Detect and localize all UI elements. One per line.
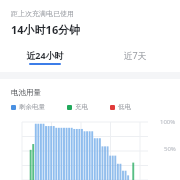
button[interactable]: 近7天: [90, 46, 180, 68]
button[interactable]: 近24小时: [0, 46, 90, 68]
staticText: 距上次充满电已使用: [11, 9, 74, 18]
staticText: 50%: [164, 145, 176, 153]
staticText: 14小时16分钟: [11, 22, 81, 37]
staticText: 100%: [160, 118, 176, 126]
staticText: 近7天: [123, 49, 147, 61]
staticText: 近24小时: [26, 49, 64, 61]
staticText: 剩余电量: [19, 103, 45, 111]
staticText: 低电: [118, 103, 131, 111]
staticText: 充电: [75, 103, 88, 111]
staticText: 电池用量: [11, 88, 41, 97]
